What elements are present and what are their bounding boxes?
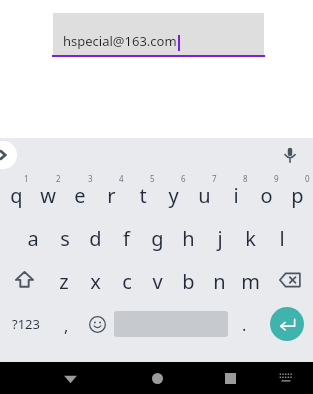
staticText: y — [168, 182, 179, 209]
staticText: j — [217, 225, 223, 252]
button[interactable]: x — [80, 258, 111, 301]
staticText: i — [233, 182, 239, 209]
button[interactable]: n — [204, 258, 235, 301]
button[interactable]: h — [173, 215, 204, 258]
button[interactable]: l — [266, 215, 297, 258]
button[interactable]: s — [49, 215, 80, 258]
staticText: a — [27, 225, 39, 252]
staticText: z — [59, 268, 69, 295]
button[interactable]: ?123 — [0, 301, 51, 347]
staticText: p — [291, 182, 304, 209]
staticText: t — [139, 182, 147, 209]
button[interactable]: i — [220, 172, 251, 215]
button[interactable]: , — [51, 301, 82, 347]
staticText: v — [152, 268, 163, 295]
button[interactable]: g — [142, 215, 173, 258]
staticText: 9 — [274, 173, 279, 184]
button[interactable]: t — [127, 172, 158, 215]
staticText: 6 — [181, 173, 186, 184]
button[interactable]: Voice input — [277, 142, 303, 168]
staticText: h — [182, 225, 195, 252]
button[interactable]: k — [235, 215, 266, 258]
staticText: s — [60, 225, 70, 252]
button[interactable]: Backspace — [266, 258, 313, 301]
button[interactable]: v — [142, 258, 173, 301]
staticText: l — [279, 225, 285, 252]
button[interactable]: Expand suggestions — [0, 141, 17, 169]
staticText: f — [123, 225, 130, 252]
staticText: n — [213, 268, 226, 295]
button[interactable]: j — [204, 215, 235, 258]
staticText: r — [107, 182, 116, 209]
button[interactable]: hspecial@163.com — [53, 13, 264, 55]
button[interactable]: e — [64, 172, 96, 215]
button[interactable]: d — [80, 215, 111, 258]
staticText: c — [122, 268, 132, 295]
button[interactable]: a — [17, 215, 49, 258]
button[interactable]: o — [251, 172, 282, 215]
button[interactable]: c — [111, 258, 142, 301]
staticText: g — [151, 225, 164, 252]
button[interactable]: Switch keyboard — [273, 365, 299, 391]
button[interactable]: f — [111, 215, 142, 258]
button[interactable]: w — [32, 172, 64, 215]
staticText: e — [74, 182, 86, 209]
staticText: k — [245, 225, 256, 252]
staticText: 3 — [88, 173, 93, 184]
staticText: 0 — [305, 173, 310, 184]
button[interactable]: u — [189, 172, 220, 215]
button[interactable]: Back — [55, 363, 85, 393]
staticText: 4 — [119, 173, 124, 184]
button[interactable]: p — [282, 172, 313, 215]
staticText: b — [182, 268, 195, 295]
button[interactable]: Shift — [0, 258, 48, 301]
staticText: d — [89, 225, 102, 252]
button[interactable]: z — [48, 258, 80, 301]
staticText: u — [198, 182, 211, 209]
button[interactable]: y — [158, 172, 189, 215]
staticText: 5 — [150, 173, 155, 184]
staticText: q — [10, 182, 23, 209]
button[interactable]: m — [235, 258, 266, 301]
button[interactable]: r — [96, 172, 127, 215]
staticText: o — [260, 182, 273, 209]
staticText: hspecial@163.com — [63, 32, 177, 50]
staticText: m — [241, 268, 260, 295]
button[interactable]: q — [0, 172, 32, 215]
button[interactable]: . — [229, 301, 260, 347]
button[interactable]: b — [173, 258, 204, 301]
staticText: . — [242, 314, 247, 336]
button[interactable]: Home — [142, 363, 172, 393]
button[interactable]: Enter — [260, 301, 313, 347]
staticText: 2 — [56, 173, 61, 184]
staticText: 7 — [212, 173, 217, 184]
staticText: , — [64, 315, 69, 337]
staticText: w — [40, 182, 56, 209]
button[interactable]: Emoji — [82, 301, 113, 347]
staticText: 1 — [24, 173, 29, 184]
staticText: x — [90, 268, 101, 295]
button[interactable]: Recents — [215, 363, 245, 393]
staticText: 8 — [243, 173, 248, 184]
staticText: ?123 — [12, 315, 40, 333]
